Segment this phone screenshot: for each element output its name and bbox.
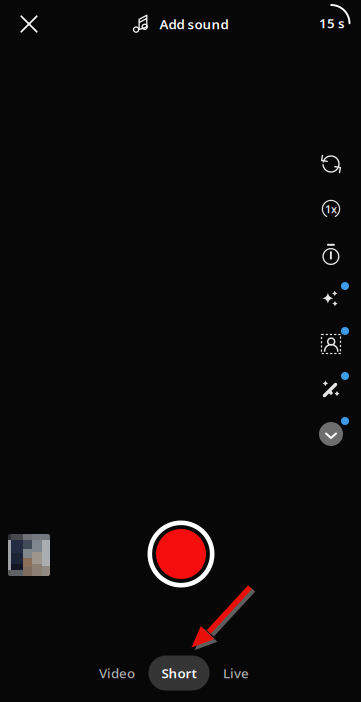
button[interactable]: Close [9, 4, 49, 44]
button[interactable]: Timer [311, 234, 351, 274]
staticText: Short [161, 664, 196, 682]
button[interactable]: Filters [311, 369, 351, 409]
button[interactable]: Short [148, 655, 209, 690]
button[interactable]: Retouch [311, 324, 351, 364]
button[interactable]: Record [145, 518, 217, 590]
button[interactable]: More [311, 414, 351, 454]
staticText: Live [223, 664, 249, 682]
staticText: 15 s [319, 14, 345, 32]
staticText: Video [99, 664, 135, 682]
button[interactable]: Gallery [8, 534, 50, 576]
button[interactable]: 15 s [304, 0, 354, 42]
staticText: Add sound [159, 15, 228, 33]
staticText: 1x [325, 202, 337, 216]
button[interactable]: Live [214, 655, 258, 690]
button[interactable]: Add sound [127, 7, 234, 41]
button[interactable]: Effects [311, 279, 351, 319]
button[interactable]: Zoom [311, 189, 351, 229]
button[interactable]: Video [93, 655, 141, 690]
button[interactable]: Flip camera [311, 144, 351, 184]
